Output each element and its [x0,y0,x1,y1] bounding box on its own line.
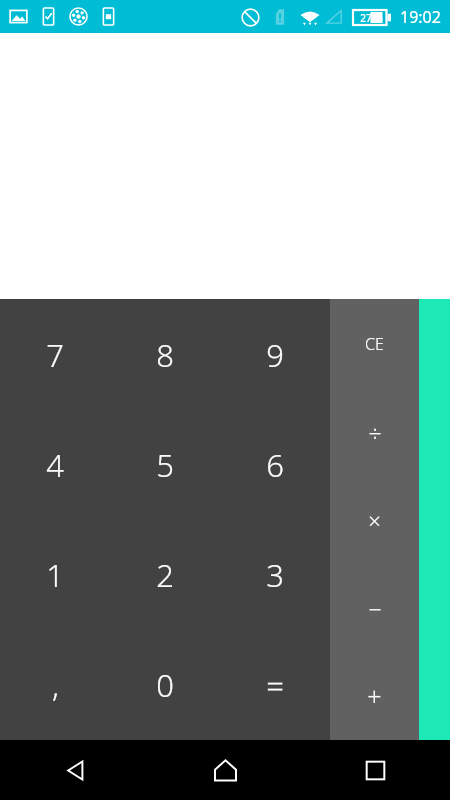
button[interactable]: 6 [220,410,330,520]
button[interactable]: Recents [300,740,450,800]
button[interactable]: 9 [220,299,330,410]
button[interactable]: − [330,564,419,652]
staticText: , [52,664,59,706]
staticText: 1 [46,554,64,596]
button[interactable]: 0 [110,630,220,740]
staticText: 3 [266,554,284,596]
button[interactable]: 3 [220,520,330,630]
staticText: ÷ [368,417,382,448]
button[interactable]: × [330,476,419,564]
staticText: 19:02 [400,6,441,28]
staticText: − [368,593,382,624]
button[interactable]: 2 [110,520,220,630]
staticText: 2 [156,554,174,596]
staticText: = [266,664,284,706]
staticText: 9 [266,334,284,376]
button[interactable]: , [0,630,110,740]
staticText: 6 [266,444,284,486]
staticText: 4 [46,444,64,486]
button[interactable]: Back [0,740,150,800]
staticText: 0 [156,664,174,706]
button[interactable]: 4 [0,410,110,520]
staticText: 27 % [360,11,383,25]
staticText: + [367,679,382,713]
staticText: 8 [156,334,174,376]
button[interactable]: 1 [0,520,110,630]
button[interactable]: 8 [110,299,220,410]
button[interactable]: 7 [0,299,110,410]
button[interactable]: ÷ [330,388,419,476]
staticText: CE [365,333,384,355]
staticText: × [368,505,381,535]
staticText: 7 [46,334,64,376]
button[interactable]: 5 [110,410,220,520]
button[interactable]: CE [330,299,419,388]
button[interactable]: + [330,652,419,740]
button[interactable]: = [220,630,330,740]
button[interactable]: Home [150,740,300,800]
staticText: 5 [156,444,174,486]
